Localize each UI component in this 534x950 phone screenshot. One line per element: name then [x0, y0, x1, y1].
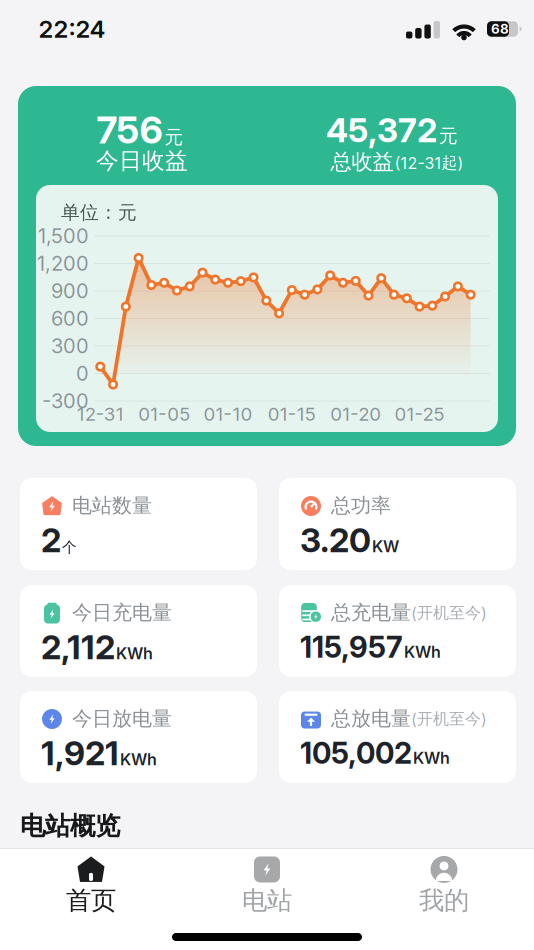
staticText: 22:24: [38, 15, 105, 43]
staticText: 600: [51, 307, 89, 330]
staticText: 首页: [66, 885, 116, 916]
staticText: (开机至今): [411, 709, 487, 729]
staticText: 电站概览: [20, 810, 120, 841]
staticText: 个: [62, 538, 77, 556]
button[interactable]: 今日放电量: [20, 691, 257, 783]
staticText: 1,921: [41, 733, 119, 773]
staticText: 总收益: [330, 149, 393, 175]
staticText: 300: [51, 334, 89, 358]
button[interactable]: 总功率: [279, 478, 516, 570]
staticText: KWh: [413, 748, 450, 767]
staticText: 单位：元: [61, 201, 137, 224]
staticText: 68: [491, 21, 509, 37]
staticText: 2: [41, 520, 61, 560]
staticText: 1,200: [37, 252, 89, 275]
button[interactable]: 电站数量: [20, 478, 257, 570]
button[interactable]: 今日充电量: [20, 585, 257, 677]
staticText: 今日收益: [96, 147, 188, 175]
staticText: 45,372: [326, 110, 437, 150]
staticText: 今日放电量: [72, 706, 172, 731]
staticText: 105,002: [300, 736, 412, 770]
staticText: 总充电量: [331, 600, 411, 625]
staticText: 1,500: [38, 224, 89, 248]
staticText: 115,957: [300, 630, 403, 664]
staticText: 01-25: [395, 403, 445, 425]
staticText: 0: [76, 362, 89, 385]
button[interactable]: 总放电量: [279, 691, 516, 783]
staticText: 12-31: [77, 403, 124, 425]
staticText: KWh: [120, 750, 157, 769]
staticText: KW: [372, 537, 399, 556]
staticText: 01-10: [203, 403, 252, 425]
button[interactable]: 首页: [36, 855, 146, 917]
staticText: (开机至今): [411, 603, 487, 623]
staticText: KWh: [404, 642, 441, 661]
staticText: KWh: [116, 644, 153, 663]
staticText: 电站数量: [72, 493, 152, 518]
staticText: 2,112: [41, 627, 115, 667]
staticText: 我的: [419, 885, 469, 916]
staticText: 01-05: [138, 403, 190, 425]
staticText: 元: [439, 124, 458, 147]
staticText: 01-15: [268, 403, 316, 425]
staticText: 756: [96, 108, 162, 152]
staticText: 电站: [242, 885, 292, 916]
staticText: 今日充电量: [72, 600, 172, 625]
button[interactable]: 电站: [212, 855, 322, 917]
staticText: 01-20: [330, 403, 381, 425]
button[interactable]: 总充电量: [279, 585, 516, 677]
staticText: 3.20: [300, 520, 371, 560]
button[interactable]: 我的: [389, 855, 499, 917]
staticText: (12-31起): [394, 153, 463, 173]
staticText: -300: [42, 389, 89, 413]
staticText: 元: [164, 126, 183, 149]
staticText: 总放电量: [331, 706, 411, 731]
staticText: 900: [51, 279, 89, 303]
staticText: 总功率: [331, 493, 391, 518]
